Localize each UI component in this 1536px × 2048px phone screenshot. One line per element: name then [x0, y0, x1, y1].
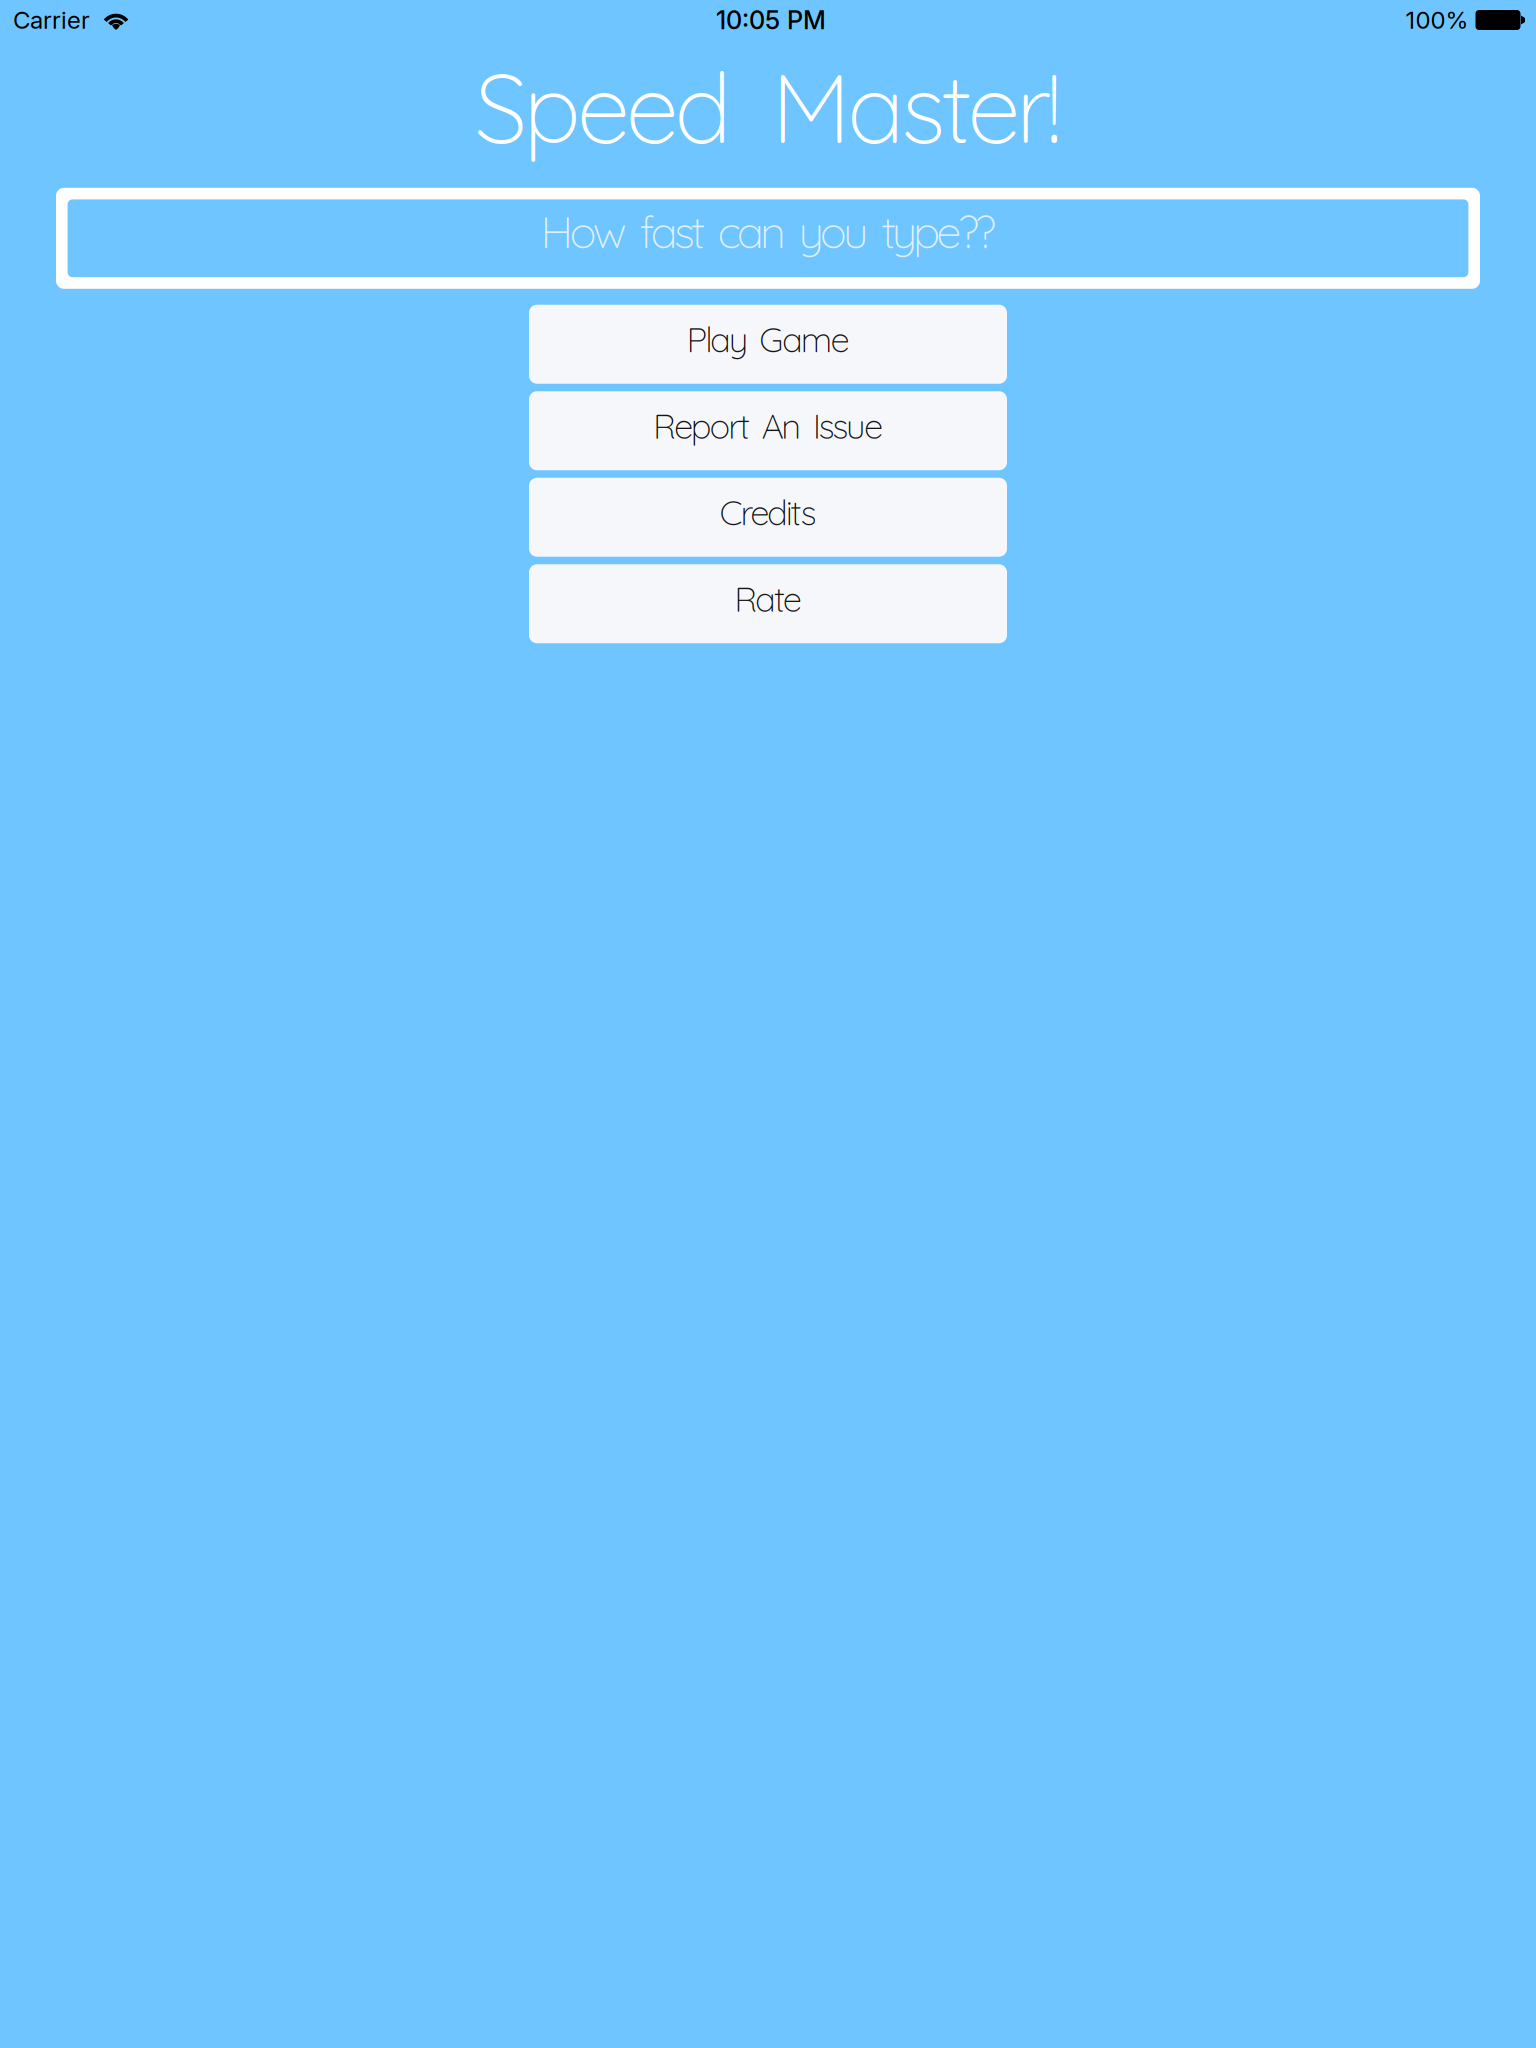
button[interactable]: Play Game — [529, 305, 1007, 384]
button[interactable]: Rate — [529, 564, 1007, 643]
staticText: 100% — [1405, 5, 1468, 34]
staticText: Play Game — [686, 318, 850, 361]
staticText: 10:05 PM — [716, 5, 826, 35]
button[interactable]: Report An Issue — [529, 391, 1007, 470]
staticText: Speed Master! — [474, 47, 1061, 167]
staticText: Report An Issue — [653, 404, 883, 447]
staticText: Carrier — [13, 5, 90, 34]
staticText: Rate — [734, 577, 802, 620]
button[interactable]: How fast can you type?? — [56, 188, 1480, 289]
staticText: How fast can you type?? — [540, 203, 996, 260]
button[interactable]: Credits — [529, 478, 1007, 557]
staticText: Credits — [720, 491, 816, 534]
